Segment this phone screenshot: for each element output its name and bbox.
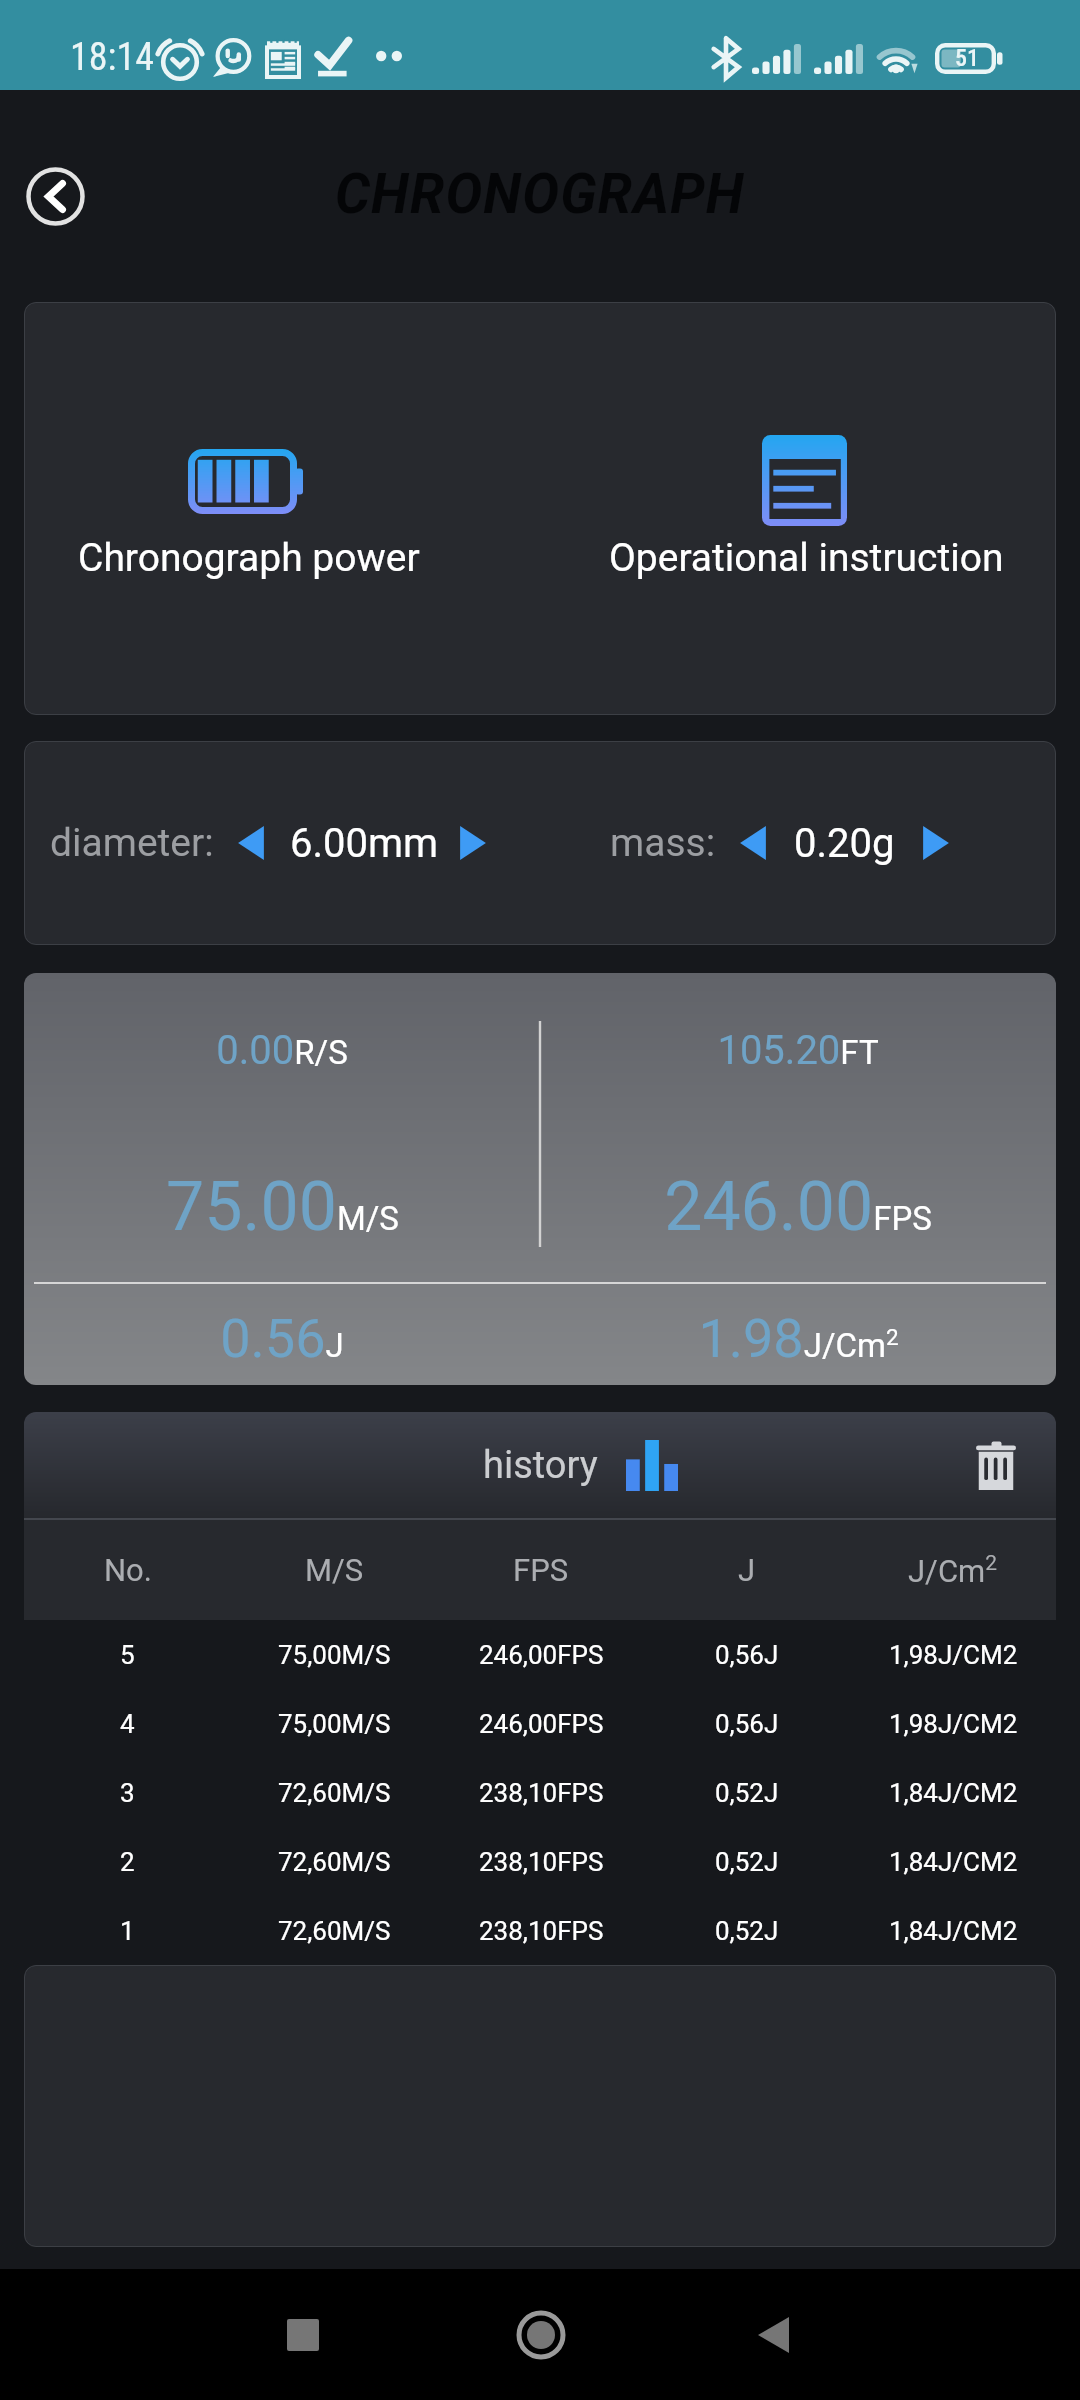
staticText: 72,60M/S [278,1916,391,1946]
staticText: FPS [513,1552,569,1588]
button[interactable]: history [483,1440,678,1491]
button[interactable]: Increase [458,821,488,865]
staticText: 1,84J/CM2 [889,1916,1018,1946]
button[interactable]: Delete history [971,1440,1021,1490]
staticText: 18:14 [70,35,154,80]
staticText: 238,10FPS [479,1847,604,1877]
staticText: 246.00FPS [664,1167,932,1247]
button[interactable]: Back [726,2287,822,2383]
staticText: Operational instruction [609,535,1004,581]
staticText: 1 [120,1916,135,1946]
staticText: 246,00FPS [479,1709,604,1739]
staticText: 3 [120,1778,135,1808]
button[interactable]: 4 [24,1689,1056,1758]
staticText: 0.56J [220,1307,344,1370]
staticText: Chronograph power [78,535,420,581]
button[interactable]: Decrease [236,821,266,865]
staticText: J [738,1552,756,1588]
staticText: 72,60M/S [278,1847,391,1877]
staticText: 105.20FT [717,1027,879,1074]
button[interactable]: 1 [24,1896,1056,1965]
staticText: 0,52J [715,1916,779,1946]
staticText: 0.00R/S [216,1027,348,1074]
button[interactable]: Decrease [738,821,768,865]
staticText: 75.00M/S [166,1167,399,1247]
staticText: 51 [955,44,979,72]
staticText: 5 [120,1640,135,1670]
button[interactable]: Home [493,2287,589,2383]
staticText: 1,84J/CM2 [889,1847,1018,1877]
staticText: 6.00mm [290,820,439,867]
staticText: 238,10FPS [479,1916,604,1946]
staticText: 0,52J [715,1778,779,1808]
button[interactable]: Recent apps [255,2287,351,2383]
button[interactable]: 5 [24,1620,1056,1689]
button[interactable]: 3 [24,1758,1056,1827]
staticText: 0,56J [715,1640,779,1670]
staticText: 1,98J/CM2 [889,1640,1018,1670]
staticText: mass: [610,820,716,866]
staticText: 2 [120,1847,135,1877]
staticText: 4 [120,1709,135,1739]
staticText: J/Cm2 [908,1551,998,1589]
staticText: 1.98J/Cm2 [698,1307,899,1370]
button[interactable]: 2 [24,1827,1056,1896]
staticText: 1,98J/CM2 [889,1709,1018,1739]
button[interactable]: Back [26,167,85,226]
button[interactable]: Operational instruction [604,422,1002,592]
staticText: 238,10FPS [479,1778,604,1808]
staticText: 0,56J [715,1709,779,1739]
staticText: 246,00FPS [479,1640,604,1670]
staticText: 72,60M/S [278,1778,391,1808]
staticText: history [483,1443,598,1488]
staticText: 1,84J/CM2 [889,1778,1018,1808]
button[interactable]: Increase [921,821,951,865]
staticText: 0.20g [794,820,895,867]
staticText: CHRONOGRAPH [335,162,745,226]
staticText: diameter: [50,820,214,866]
staticText: 75,00M/S [278,1709,391,1739]
staticText: 0,52J [715,1847,779,1877]
button[interactable]: Chronograph power [74,422,459,592]
staticText: 75,00M/S [278,1640,391,1670]
staticText: M/S [305,1552,364,1588]
staticText: No. [104,1552,152,1588]
